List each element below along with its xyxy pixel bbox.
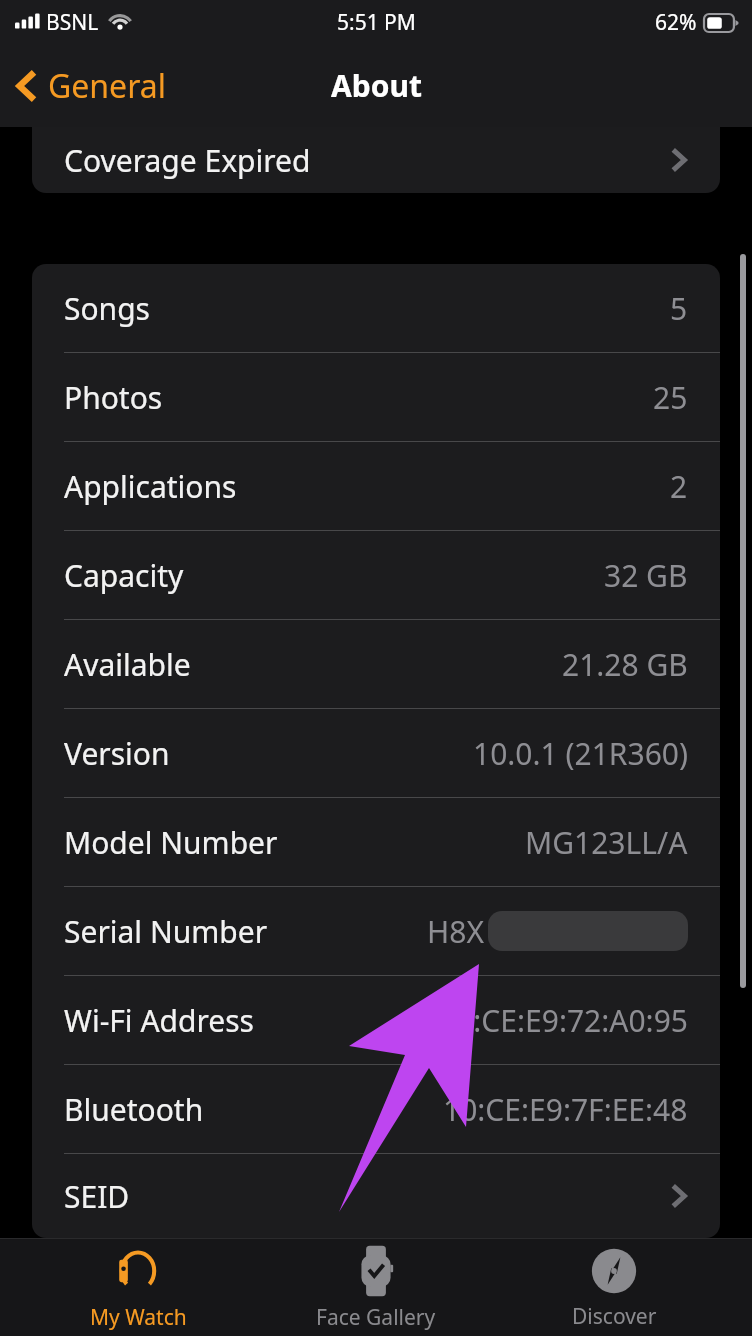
button[interactable]: Version [32,709,720,797]
staticText: BSNL [46,8,99,37]
staticText: 32 GB [604,555,688,596]
staticText: Capacity [64,555,184,596]
staticText: 10:CE:E9:7F:EE:48 [443,1089,688,1130]
staticText: 21.28 GB [562,644,688,685]
staticText: Discover [572,1302,657,1331]
button[interactable]: Photos [32,353,720,441]
staticText: 25 [653,377,688,418]
staticText: My Watch [90,1303,187,1332]
staticText: Coverage Expired [64,140,311,181]
staticText: 2 [670,466,688,507]
button[interactable]: Applications [32,442,720,530]
button[interactable]: Capacity [32,531,720,619]
staticText: H8X [427,911,484,952]
staticText: General [48,64,166,108]
button[interactable]: My Watch [38,1239,238,1336]
staticText: Songs [64,288,150,329]
staticText: Face Gallery [316,1303,436,1332]
button[interactable]: SEID [32,1154,720,1238]
button[interactable]: Coverage Expired [32,127,720,193]
staticText: Wi-Fi Address [64,1000,254,1041]
button[interactable]: Available [32,620,720,708]
button[interactable]: Model Number [32,798,720,886]
staticText: Applications [64,466,237,507]
staticText: About [331,65,422,106]
button[interactable]: Face Gallery [276,1239,476,1336]
button[interactable]: Bluetooth [32,1065,720,1153]
staticText: Serial Number [64,911,268,952]
staticText: Available [64,644,191,685]
staticText: Bluetooth [64,1089,204,1130]
button[interactable]: Songs [32,264,720,352]
staticText: 5 [670,288,688,329]
staticText: SEID [64,1176,130,1217]
staticText: MG123LL/A [525,822,688,863]
button[interactable]: Wi-Fi Address [32,976,720,1064]
staticText: 62% [655,8,697,37]
button[interactable]: Discover [514,1240,714,1335]
staticText: 5:51 PM [337,8,416,37]
button[interactable]: Serial Number [32,887,720,975]
button[interactable]: General [0,56,180,116]
staticText: Photos [64,377,163,418]
staticText: Version [64,733,170,774]
staticText: Model Number [64,822,278,863]
staticText: 10.0.1 (21R360) [473,733,688,774]
staticText: 10:CE:E9:72:A0:95 [439,1000,688,1041]
